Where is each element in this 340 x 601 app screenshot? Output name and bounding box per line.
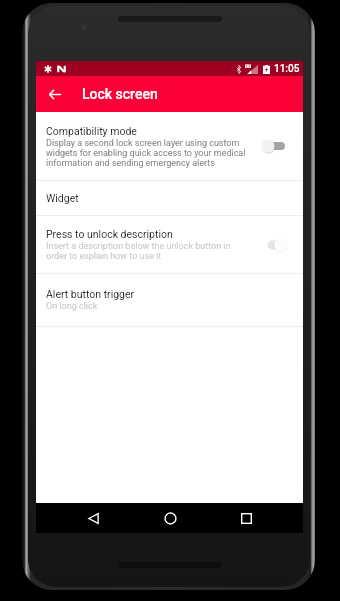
button[interactable]: Press to unlock description bbox=[36, 216, 303, 273]
button[interactable]: Alert button trigger bbox=[36, 274, 303, 326]
staticText: Press to unlock description bbox=[46, 228, 173, 240]
button[interactable]: Back bbox=[73, 503, 113, 533]
staticText: 11:05 bbox=[274, 63, 300, 75]
staticText: Display a second lock screen layer using… bbox=[46, 138, 246, 168]
button[interactable]: Compatibility mode bbox=[36, 112, 303, 180]
button[interactable]: Widget bbox=[36, 181, 303, 215]
staticText: Compatibility mode bbox=[46, 125, 137, 137]
staticText: Insert a description below the unlock bu… bbox=[46, 241, 246, 261]
staticText: Lock screen bbox=[82, 86, 158, 102]
button[interactable]: Recents bbox=[226, 503, 266, 533]
button[interactable]: Toggle bbox=[258, 134, 288, 158]
button[interactable]: Navigate up bbox=[37, 76, 73, 112]
button[interactable]: Toggle bbox=[258, 233, 288, 257]
staticText: Widget bbox=[46, 192, 79, 204]
button[interactable]: Home bbox=[150, 503, 190, 533]
staticText: Alert button trigger bbox=[46, 288, 135, 300]
staticText: On long click bbox=[46, 301, 98, 312]
